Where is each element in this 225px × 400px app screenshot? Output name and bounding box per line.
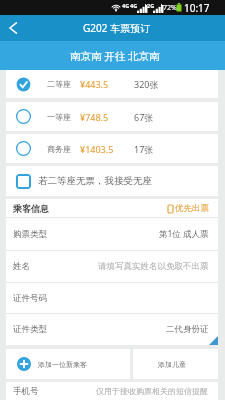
staticText: G202 车票预订: [83, 21, 151, 35]
staticText: 南京南 开往 北京南: [70, 49, 160, 63]
staticText: 4G: [130, 2, 138, 9]
staticText: 若二等座无票，我接受无座: [38, 175, 152, 187]
staticText: 添加一位新乘客: [38, 360, 87, 369]
staticText: 购票类型: [13, 229, 47, 240]
button[interactable]: 证件类型: [6, 314, 218, 345]
button[interactable]: 证件号码: [6, 283, 218, 313]
staticText: 二代身份证: [166, 324, 209, 335]
staticText: ¥443.5: [80, 78, 109, 90]
button[interactable]: 一等座: [6, 102, 218, 131]
button[interactable]: 添加一位新乘客: [6, 349, 130, 379]
staticText: 添加儿童: [158, 360, 186, 369]
button[interactable]: 商务座: [6, 134, 218, 163]
button[interactable]: 若二等座无票，我接受无座: [6, 166, 218, 196]
staticText: 二等座: [47, 79, 71, 89]
staticText: 姓名: [13, 261, 30, 272]
staticText: 仅用于接收购票相关的短信提醒: [96, 386, 208, 396]
staticText: 17张: [134, 143, 154, 155]
staticText: 乘客信息: [13, 203, 49, 214]
staticText: 10:17: [184, 1, 210, 15]
staticText: 67张: [134, 111, 154, 123]
staticText: 证件号码: [13, 293, 47, 304]
staticText: 请填写真实姓名以免取不出票: [98, 261, 209, 272]
staticText: 一等座: [47, 112, 71, 122]
staticText: 第1位 成人票: [159, 228, 209, 240]
button[interactable]: 优先出票: [168, 203, 209, 214]
staticText: 证件类型: [13, 324, 47, 335]
button[interactable]: Back: [0, 15, 26, 41]
button[interactable]: 购票类型: [6, 218, 218, 250]
button[interactable]: 二等座: [6, 70, 218, 98]
staticText: ¥748.5: [80, 111, 109, 123]
staticText: 商务座: [47, 144, 71, 154]
staticText: 72%: [163, 3, 177, 13]
staticText: ¥1403.5: [80, 143, 114, 155]
button[interactable]: 姓名: [6, 251, 218, 282]
button[interactable]: 添加儿童: [133, 349, 218, 379]
staticText: 320张: [134, 78, 159, 90]
staticText: 优先出票: [175, 203, 209, 214]
staticText: 手机号: [13, 386, 39, 397]
staticText: 4G: [122, 2, 130, 9]
staticText: 2G: [147, 2, 155, 9]
